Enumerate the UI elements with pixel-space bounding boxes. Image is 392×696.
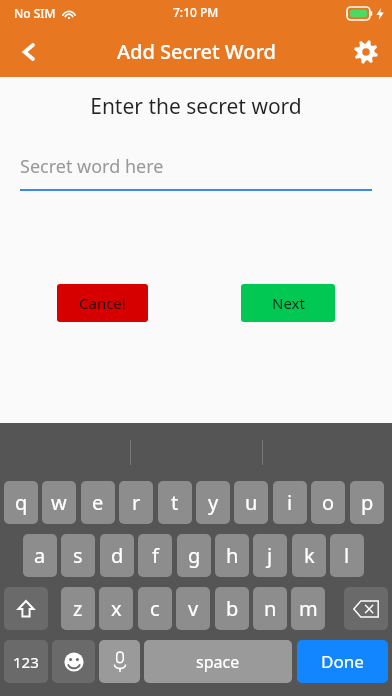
button[interactable]: Done	[297, 640, 388, 683]
staticText: b	[226, 595, 239, 622]
staticText: h	[226, 542, 239, 569]
staticText: Cancel	[79, 293, 126, 313]
staticText: i	[287, 489, 293, 516]
button[interactable]: p	[350, 481, 384, 524]
staticText: Secret word here	[20, 154, 164, 179]
staticText: f	[152, 542, 159, 569]
staticText: v	[188, 595, 199, 622]
staticText: m	[299, 595, 318, 622]
button[interactable]: space	[144, 640, 292, 683]
staticText: a	[34, 542, 46, 569]
button[interactable]: m	[291, 587, 325, 630]
button[interactable]: Shift	[4, 587, 48, 630]
button[interactable]: o	[311, 481, 345, 524]
staticText: space	[196, 651, 240, 673]
button[interactable]: v	[176, 587, 210, 630]
button[interactable]: a	[23, 534, 57, 577]
button[interactable]: Back	[5, 28, 53, 76]
staticText: Enter the secret word	[90, 92, 302, 121]
button[interactable]: 123	[4, 640, 48, 683]
staticText: o	[322, 489, 335, 516]
staticText: 123	[13, 652, 39, 672]
button[interactable]: i	[273, 481, 307, 524]
button[interactable]: c	[138, 587, 172, 630]
button[interactable]: b	[215, 587, 249, 630]
button[interactable]: e	[81, 481, 115, 524]
button[interactable]: q	[4, 481, 38, 524]
staticText: w	[51, 489, 67, 516]
button[interactable]: y	[196, 481, 230, 524]
staticText: s	[73, 542, 83, 569]
button[interactable]: x	[99, 587, 133, 630]
staticText: t	[171, 489, 179, 516]
staticText: l	[344, 542, 350, 569]
button[interactable]: Backspace	[344, 587, 388, 630]
staticText: u	[245, 489, 258, 516]
button[interactable]: s	[61, 534, 95, 577]
staticText: n	[264, 595, 277, 622]
button[interactable]: d	[100, 534, 134, 577]
button[interactable]: Next	[241, 284, 335, 322]
button[interactable]: w	[42, 481, 76, 524]
staticText: k	[304, 542, 315, 569]
button[interactable]: l	[330, 534, 364, 577]
staticText: x	[111, 595, 122, 622]
button[interactable]: Voice input	[99, 640, 140, 683]
staticText: Next	[272, 293, 305, 313]
button[interactable]: j	[253, 534, 287, 577]
staticText: r	[132, 489, 141, 516]
staticText: j	[267, 542, 273, 569]
button[interactable]: t	[158, 481, 192, 524]
button[interactable]: k	[292, 534, 326, 577]
staticText: No SIM	[14, 5, 56, 21]
staticText: p	[361, 489, 374, 516]
staticText: Done	[321, 650, 364, 673]
staticText: Add Secret Word	[117, 38, 276, 65]
staticText: 7:10 PM	[173, 4, 219, 20]
staticText: y	[208, 489, 219, 516]
staticText: d	[111, 542, 124, 569]
button[interactable]: Emoji	[52, 640, 95, 683]
button[interactable]: u	[234, 481, 268, 524]
button[interactable]: r	[119, 481, 153, 524]
button[interactable]: Cancel	[57, 284, 148, 322]
button[interactable]: n	[253, 587, 287, 630]
button[interactable]: h	[215, 534, 249, 577]
staticText: z	[73, 595, 83, 622]
staticText: g	[188, 542, 201, 569]
staticText: q	[15, 489, 28, 516]
button[interactable]: Secret word here	[20, 147, 372, 191]
staticText: c	[150, 595, 160, 622]
button[interactable]: z	[61, 587, 95, 630]
button[interactable]: Settings	[342, 28, 390, 76]
button[interactable]: f	[138, 534, 172, 577]
staticText: e	[92, 489, 104, 516]
button[interactable]: g	[177, 534, 211, 577]
